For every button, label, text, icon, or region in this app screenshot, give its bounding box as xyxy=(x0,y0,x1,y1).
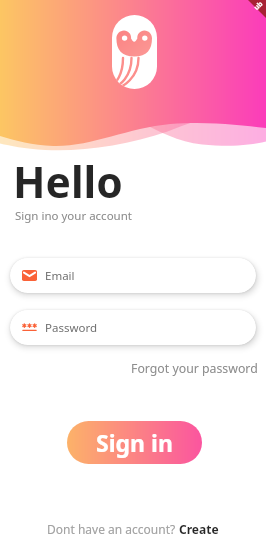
staticText: Password xyxy=(45,320,98,336)
staticText: ub xyxy=(252,0,265,13)
button[interactable]: Dont have an account? xyxy=(47,521,219,537)
staticText: Sign ino your account xyxy=(15,208,132,224)
staticText: Create xyxy=(179,521,219,537)
button[interactable]: Sign in xyxy=(67,421,202,464)
button[interactable]: Forgot your password xyxy=(129,358,260,379)
button[interactable]: Password xyxy=(10,310,256,345)
staticText: Forgot your password xyxy=(131,360,258,377)
button[interactable]: Fork me on GitHub xyxy=(226,0,266,40)
button[interactable]: Email xyxy=(10,258,256,293)
staticText: Sign in xyxy=(96,427,173,458)
staticText: Hello xyxy=(13,153,123,211)
staticText: Dont have an account? xyxy=(47,521,179,537)
staticText: Email xyxy=(45,268,75,284)
